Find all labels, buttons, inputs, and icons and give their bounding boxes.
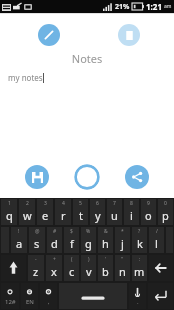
button[interactable]: 2 xyxy=(19,199,35,225)
staticText: $ xyxy=(70,228,73,235)
staticText: r xyxy=(61,208,66,223)
button[interactable]: Share xyxy=(125,165,149,189)
staticText: l xyxy=(155,236,158,251)
staticText: v xyxy=(86,264,92,279)
staticText: f xyxy=(70,236,74,251)
button[interactable]: Save xyxy=(25,165,49,189)
button[interactable]: & xyxy=(98,227,113,253)
staticText: 4 xyxy=(62,200,65,207)
button[interactable]: Edit note xyxy=(38,24,60,46)
button[interactable]: Space xyxy=(59,283,127,309)
staticText: & xyxy=(104,228,108,235)
button[interactable]: ( xyxy=(64,255,79,281)
staticText: ? xyxy=(138,228,141,235)
staticText: ( xyxy=(71,256,73,263)
staticText: 0 xyxy=(164,200,167,207)
button[interactable]: : xyxy=(132,255,147,281)
button[interactable]: 8 xyxy=(124,199,139,225)
button[interactable]: 4 xyxy=(55,199,71,225)
staticText: s xyxy=(34,236,40,251)
staticText: x xyxy=(51,264,57,279)
button[interactable]: 0 xyxy=(158,199,173,225)
button[interactable]: 9 xyxy=(141,199,156,225)
button[interactable]: % xyxy=(81,227,96,253)
staticText: e xyxy=(42,208,49,223)
staticText: k xyxy=(137,236,143,251)
staticText: ) xyxy=(88,256,90,263)
staticText: g xyxy=(85,236,92,251)
button[interactable]: # xyxy=(47,227,62,253)
staticText: / xyxy=(156,228,158,235)
button[interactable]: Symbols xyxy=(1,283,19,309)
staticText: - xyxy=(35,256,37,263)
button[interactable]: Shift xyxy=(1,255,26,281)
button[interactable]: @ xyxy=(29,227,45,253)
button[interactable]: 6 xyxy=(90,199,105,225)
button[interactable]: Voice input xyxy=(129,283,146,309)
button[interactable]: + xyxy=(46,255,62,281)
staticText: m xyxy=(134,264,145,279)
staticText: 7 xyxy=(113,200,116,207)
staticText: ! xyxy=(18,228,20,235)
staticText: . xyxy=(137,298,139,306)
button[interactable]: 7 xyxy=(107,199,122,225)
staticText: EN xyxy=(26,298,34,306)
staticText: * xyxy=(121,228,124,235)
staticText: p xyxy=(162,208,169,223)
staticText: c xyxy=(69,264,75,279)
button[interactable]: / xyxy=(149,227,164,253)
staticText: d xyxy=(51,236,58,251)
staticText: o xyxy=(145,208,152,223)
button[interactable]: ' xyxy=(98,255,113,281)
staticText: 1 xyxy=(8,200,11,207)
staticText: 3 xyxy=(44,200,47,207)
button[interactable]: - xyxy=(28,255,44,281)
button[interactable]: ? xyxy=(132,227,147,253)
staticText: u xyxy=(111,208,118,223)
staticText: 1:21 xyxy=(146,1,162,12)
staticText: z xyxy=(33,264,39,279)
staticText: # xyxy=(53,228,57,235)
button[interactable]: 1 xyxy=(1,199,17,225)
staticText: q xyxy=(6,208,13,223)
staticText: 2 xyxy=(26,200,29,207)
button[interactable]: ) xyxy=(81,255,96,281)
staticText: ' xyxy=(105,256,107,263)
button[interactable]: $ xyxy=(64,227,79,253)
staticText: @ xyxy=(35,228,40,235)
staticText: am xyxy=(164,3,172,10)
staticText: n xyxy=(119,264,126,279)
button[interactable]: " xyxy=(115,255,130,281)
button[interactable]: Settings xyxy=(40,283,57,309)
staticText: my notes xyxy=(8,72,43,83)
staticText: 12# xyxy=(5,298,16,306)
button[interactable]: New note xyxy=(118,24,140,46)
staticText: , xyxy=(48,298,50,306)
staticText: h xyxy=(102,236,109,251)
staticText: w xyxy=(23,208,32,223)
staticText: : xyxy=(139,256,141,263)
staticText: + xyxy=(53,256,56,263)
staticText: a xyxy=(16,236,23,251)
staticText: Notes xyxy=(0,51,174,66)
staticText: 8 xyxy=(130,200,133,207)
staticText: t xyxy=(79,208,83,223)
staticText: % xyxy=(86,228,91,235)
staticText: " xyxy=(121,256,124,263)
staticText: 5 xyxy=(79,200,82,207)
staticText: b xyxy=(102,264,109,279)
button[interactable]: Record xyxy=(74,164,100,190)
button[interactable]: ! xyxy=(11,227,27,253)
button[interactable]: 3 xyxy=(37,199,53,225)
staticText: 6 xyxy=(96,200,99,207)
staticText: 21% xyxy=(115,2,130,12)
button[interactable]: * xyxy=(115,227,130,253)
button[interactable]: Language xyxy=(21,283,38,309)
staticText: i xyxy=(130,208,133,223)
button[interactable]: Backspace xyxy=(149,255,173,281)
staticText: 9 xyxy=(147,200,150,207)
button[interactable]: Enter xyxy=(148,283,173,309)
staticText: j xyxy=(121,236,124,251)
button[interactable]: 5 xyxy=(73,199,88,225)
staticText: y xyxy=(95,208,101,223)
